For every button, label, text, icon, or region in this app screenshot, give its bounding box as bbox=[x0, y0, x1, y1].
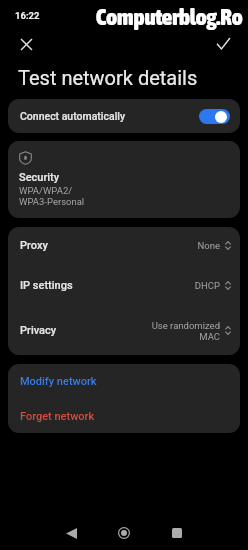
staticText: Privacy bbox=[20, 324, 57, 337]
button[interactable]: Security bbox=[8, 141, 240, 218]
button[interactable]: Save bbox=[209, 29, 237, 57]
button[interactable]: Back bbox=[52, 516, 90, 550]
button[interactable]: Forget network bbox=[8, 399, 240, 433]
button[interactable]: Proxy bbox=[8, 227, 240, 264]
staticText: Security bbox=[19, 171, 60, 184]
staticText: IP settings bbox=[20, 279, 73, 292]
button[interactable]: Close bbox=[12, 30, 40, 58]
button[interactable]: Privacy bbox=[8, 306, 240, 355]
button[interactable]: Recents bbox=[158, 516, 196, 550]
button[interactable]: IP settings bbox=[8, 264, 240, 306]
staticText: Proxy bbox=[20, 239, 48, 252]
button[interactable]: Connect automatically bbox=[8, 99, 240, 133]
staticText: Computerblog.Ro bbox=[96, 4, 243, 30]
staticText: WPA/WPA2/ WPA3-Personal bbox=[19, 185, 85, 207]
staticText: Connect automatically bbox=[20, 110, 126, 122]
staticText: Forget network bbox=[20, 410, 95, 423]
staticText: DHCP bbox=[194, 280, 220, 291]
staticText: Test network details bbox=[18, 66, 198, 89]
button[interactable]: Home bbox=[105, 516, 143, 550]
staticText: None bbox=[197, 240, 220, 251]
staticText: Use randomized MAC bbox=[151, 320, 220, 342]
button[interactable]: Modify network bbox=[8, 364, 240, 399]
staticText: Modify network bbox=[20, 375, 97, 388]
staticText: 16:22 bbox=[15, 10, 40, 21]
